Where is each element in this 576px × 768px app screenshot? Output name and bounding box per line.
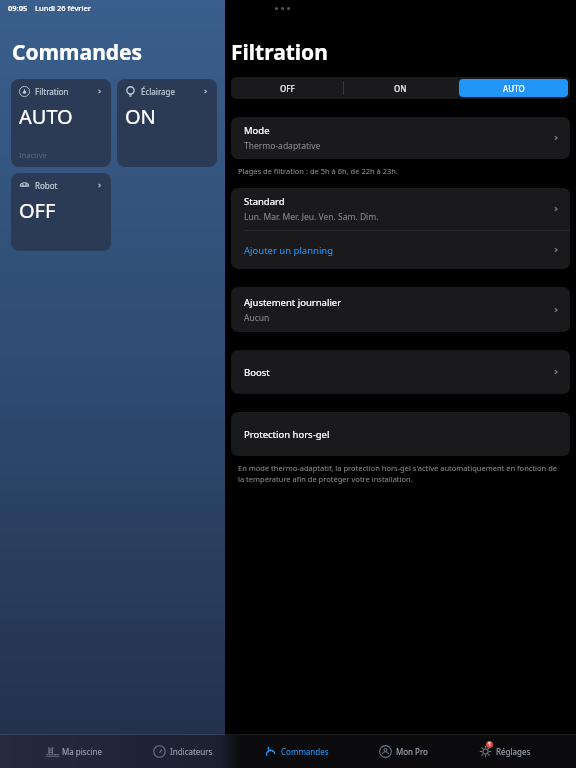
- button[interactable]: AUTO: [459, 79, 568, 97]
- staticText: Ajouter un planning: [244, 244, 334, 257]
- button[interactable]: Protection hors-gel: [231, 412, 570, 456]
- staticText: Lun. Mar. Mer. Jeu. Ven. Sam. Dim.: [244, 211, 379, 223]
- button[interactable]: OFF: [231, 77, 343, 99]
- button[interactable]: Filtration: [11, 79, 111, 167]
- staticText: Thermo-adaptative: [244, 140, 321, 152]
- button[interactable]: More options: [275, 7, 290, 10]
- staticText: Réglages: [496, 746, 531, 757]
- button[interactable]: Éclairage: [117, 79, 217, 167]
- staticText: Indicateurs: [170, 746, 213, 757]
- button[interactable]: ON: [344, 77, 457, 99]
- staticText: Standard: [244, 195, 285, 208]
- staticText: Filtration: [231, 38, 328, 67]
- staticText: Commandes: [12, 38, 143, 67]
- staticText: ON: [394, 83, 407, 94]
- staticText: Inactive: [19, 150, 47, 160]
- staticText: Plages de filtration : de 5h à 6h, de 22…: [238, 166, 398, 176]
- staticText: OFF: [19, 197, 56, 224]
- staticText: ON: [125, 103, 156, 130]
- button[interactable]: Mode: [231, 117, 570, 159]
- staticText: Ma piscine: [62, 746, 102, 757]
- staticText: Robot: [35, 180, 58, 191]
- button[interactable]: Commandes: [258, 741, 335, 762]
- button[interactable]: Standard: [231, 188, 570, 230]
- staticText: En mode thermo-adaptatif, la protection …: [238, 463, 562, 484]
- button[interactable]: Ajouter un planning: [231, 231, 570, 269]
- staticText: 09:05: [8, 3, 28, 13]
- staticText: OFF: [280, 83, 295, 94]
- button[interactable]: Indicateurs: [147, 741, 219, 762]
- staticText: 1: [488, 741, 491, 748]
- button[interactable]: Ma piscine: [39, 741, 108, 762]
- staticText: AUTO: [503, 83, 525, 94]
- staticText: Filtration: [35, 86, 69, 97]
- staticText: Commandes: [281, 746, 329, 757]
- staticText: Protection hors-gel: [244, 428, 330, 441]
- button[interactable]: Robot: [11, 173, 111, 251]
- staticText: Lundi 26 février: [35, 3, 92, 13]
- staticText: Boost: [244, 366, 270, 379]
- button[interactable]: Boost: [231, 350, 570, 394]
- button[interactable]: Ajustement journalier: [231, 287, 570, 332]
- staticText: Aucun: [244, 312, 270, 324]
- staticText: Mode: [244, 124, 270, 137]
- staticText: Éclairage: [141, 86, 175, 97]
- button[interactable]: 1: [473, 741, 537, 762]
- staticText: Mon Pro: [396, 746, 428, 757]
- staticText: AUTO: [19, 103, 73, 130]
- button[interactable]: Mon Pro: [373, 741, 434, 762]
- staticText: Ajustement journalier: [244, 296, 342, 309]
